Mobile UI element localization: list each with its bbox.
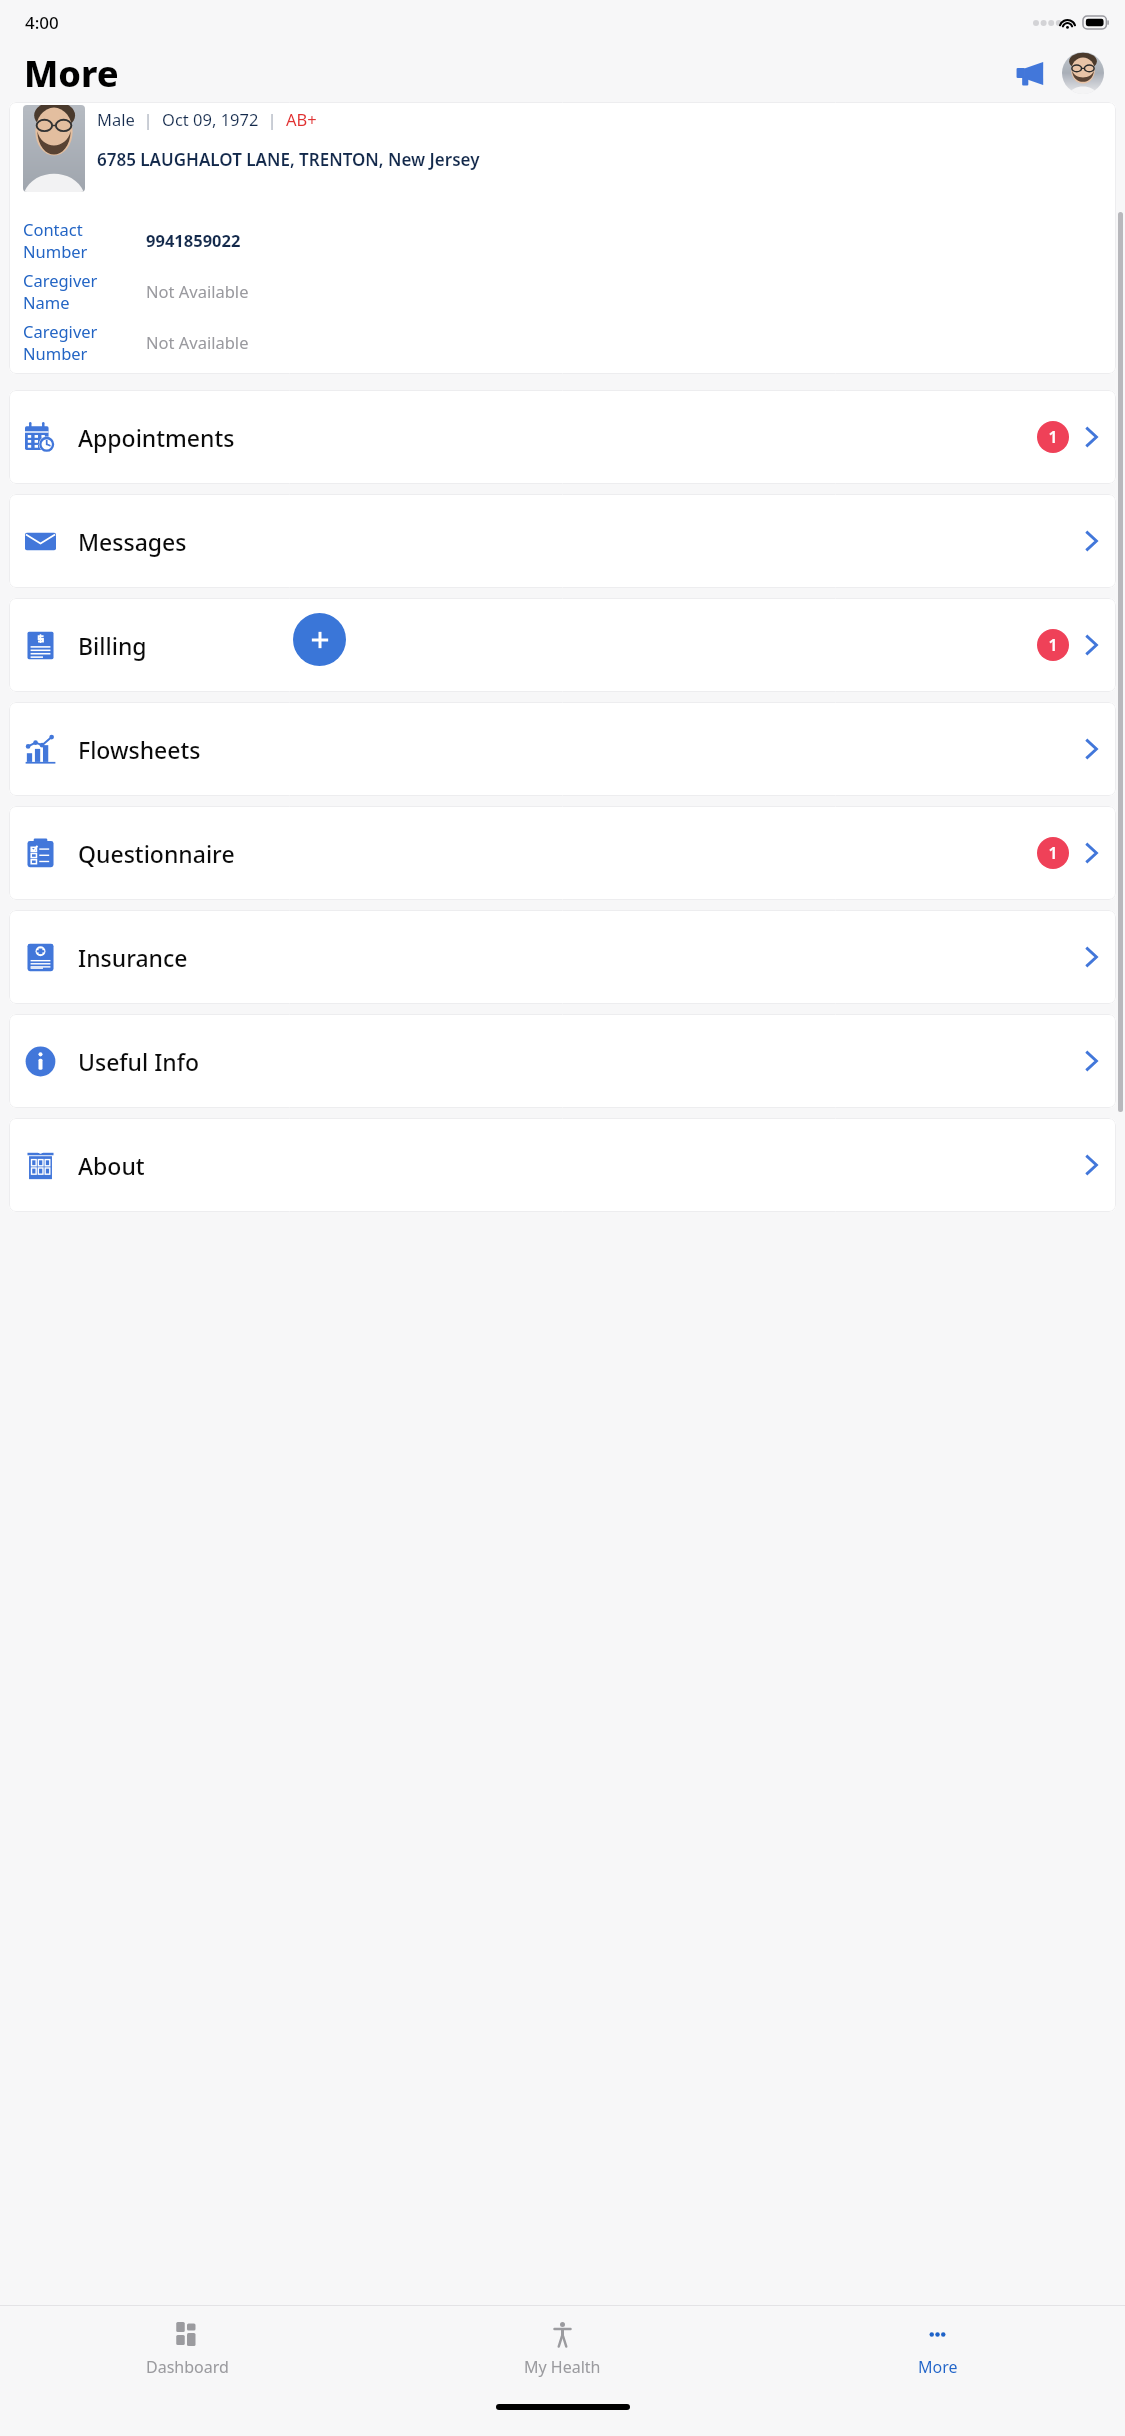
staticText: Billing — [78, 630, 1037, 661]
staticText: More — [918, 2356, 958, 2378]
staticText: Dashboard — [146, 2356, 229, 2378]
button[interactable]: Flowsheets — [9, 702, 1116, 796]
button[interactable]: Messages — [9, 494, 1116, 588]
staticText: | — [259, 108, 286, 130]
staticText: 1 — [1048, 842, 1058, 864]
staticText: Useful Info — [78, 1046, 1085, 1077]
staticText: Male — [97, 108, 135, 130]
staticText: AB+ — [286, 108, 317, 130]
staticText: 9941859022 — [146, 229, 241, 251]
staticText: Not Available — [146, 331, 249, 353]
staticText: Questionnaire — [78, 838, 1037, 869]
staticText: Contact Number — [23, 218, 139, 262]
staticText: Messages — [78, 526, 1085, 557]
button[interactable]: About — [9, 1118, 1116, 1212]
staticText: Insurance — [78, 942, 1085, 973]
button[interactable]: Appointments — [9, 390, 1116, 484]
staticText: Caregiver Number — [23, 320, 139, 364]
button[interactable]: Useful Info — [9, 1014, 1116, 1108]
staticText: About — [78, 1150, 1085, 1181]
button[interactable]: Profile — [1062, 52, 1104, 94]
staticText: 4:00 — [25, 11, 59, 34]
staticText: 1 — [1048, 426, 1058, 448]
staticText: Flowsheets — [78, 734, 1085, 765]
staticText: Oct 09, 1972 — [162, 108, 259, 130]
staticText: | — [135, 108, 162, 130]
staticText: My Health — [524, 2356, 601, 2378]
staticText: Not Available — [146, 280, 249, 302]
button[interactable]: More — [750, 2306, 1125, 2392]
staticText: More — [24, 49, 119, 98]
button[interactable]: My Health — [375, 2306, 750, 2392]
button[interactable]: Male — [9, 102, 1116, 374]
button[interactable]: Add — [293, 613, 346, 666]
staticText: Caregiver Name — [23, 269, 139, 313]
button[interactable]: Dashboard — [0, 2306, 375, 2392]
staticText: 1 — [1048, 634, 1058, 656]
staticText: 6785 LAUGHALOT LANE, TRENTON, New Jersey — [97, 148, 480, 171]
button[interactable]: Insurance — [9, 910, 1116, 1004]
button[interactable]: Questionnaire — [9, 806, 1116, 900]
staticText: Appointments — [78, 422, 1037, 453]
button[interactable]: Billing — [9, 598, 1116, 692]
button[interactable]: Announcements — [1008, 51, 1052, 95]
